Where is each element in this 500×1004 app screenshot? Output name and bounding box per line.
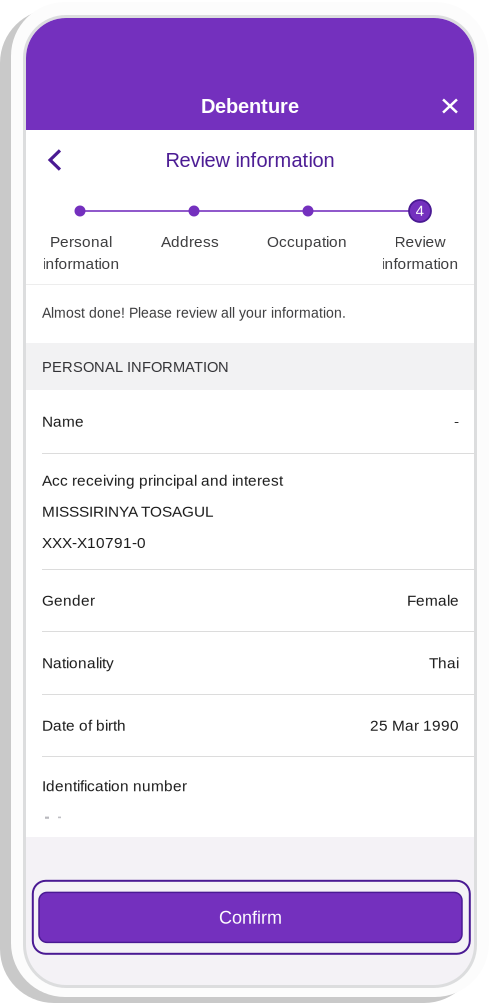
staticText: - [454,413,459,430]
staticText: Debenture [201,95,299,117]
staticText: Almost done! Please review all your info… [42,305,346,321]
staticText: Review [394,233,445,250]
staticText: Address [161,233,219,250]
staticText: Confirm [219,907,282,927]
staticText: Personal [50,233,112,250]
staticText: Acc receiving principal and interest [42,472,283,489]
staticText: PERSONAL INFORMATION [42,359,229,375]
staticText: Female [407,592,459,609]
staticText: Occupation [267,233,347,250]
staticText: Thai [429,654,459,671]
staticText: Name [42,413,84,430]
staticText: Review information [165,149,334,171]
staticText: Date of birth [42,717,126,734]
staticText: information [381,255,458,272]
staticText: Identification number [42,777,187,794]
staticText: 4 [415,202,424,219]
staticText: 25 Mar 1990 [370,717,459,734]
button[interactable]: Confirm [33,881,470,954]
staticText: information [42,255,119,272]
button[interactable]: Close [430,86,470,126]
staticText: Nationality [42,654,114,671]
staticText: Gender [42,592,95,609]
staticText: MISSSIRINYA TOSAGUL [42,503,214,520]
button[interactable]: Back [34,139,76,181]
staticText: XXX-X10791-0 [42,534,146,551]
